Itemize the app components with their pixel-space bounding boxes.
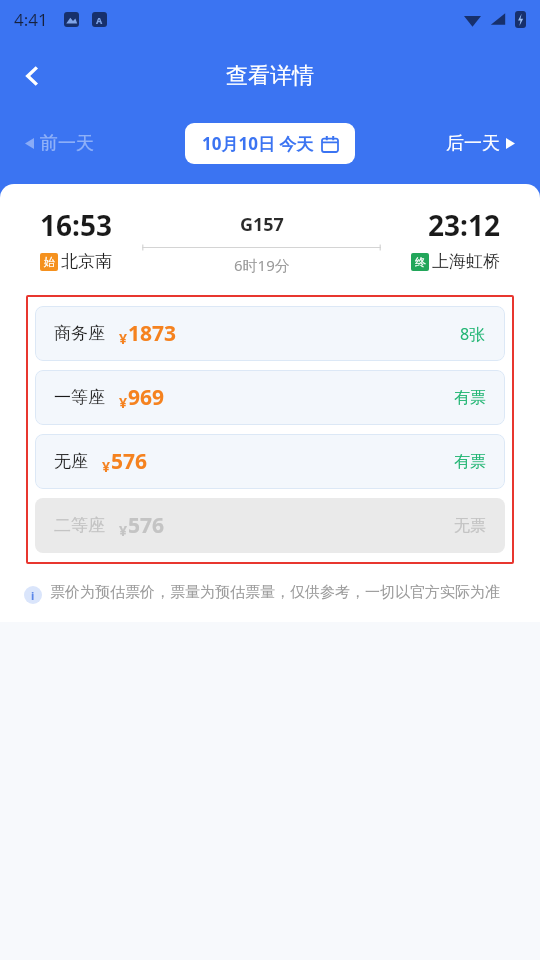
staticText: 969 xyxy=(128,383,165,412)
staticText: 576 xyxy=(128,511,165,540)
staticText: 6时19分 xyxy=(234,255,290,275)
staticText: 16:53 xyxy=(40,206,112,244)
button[interactable]: 16:53 xyxy=(26,202,514,279)
staticText: 后一天 xyxy=(446,132,500,155)
staticText: 4:41 xyxy=(14,8,48,31)
button[interactable]: 前一天 xyxy=(20,127,99,160)
staticText: ¥ xyxy=(119,521,128,540)
button[interactable]: 商务座 xyxy=(35,306,505,361)
staticText: A xyxy=(96,14,103,26)
staticText: 无票 xyxy=(454,516,486,536)
button[interactable]: Back xyxy=(9,52,57,100)
button[interactable]: 无座 xyxy=(35,434,505,489)
staticText: 北京南 xyxy=(61,251,112,272)
staticText: G157 xyxy=(240,212,284,237)
button[interactable]: 一等座 xyxy=(35,370,505,425)
button[interactable]: 后一天 xyxy=(441,127,520,160)
staticText: 10月10日 今天 xyxy=(202,132,314,155)
staticText: 1873 xyxy=(128,319,177,348)
staticText: 二等座 xyxy=(54,515,105,536)
staticText: i xyxy=(31,588,35,603)
button[interactable]: 10月10日 今天 xyxy=(185,123,355,164)
staticText: 576 xyxy=(111,447,148,476)
staticText: 8张 xyxy=(460,323,486,345)
staticText: 前一天 xyxy=(40,132,94,155)
staticText: 有票 xyxy=(454,388,486,408)
staticText: 始 xyxy=(44,255,55,269)
staticText: 一等座 xyxy=(54,387,105,408)
staticText: 无座 xyxy=(54,451,88,472)
staticText: 查看详情 xyxy=(226,62,314,90)
staticText: 23:12 xyxy=(428,206,500,244)
button: 二等座 xyxy=(35,498,505,553)
staticText: ¥ xyxy=(119,393,128,412)
staticText: ¥ xyxy=(119,329,128,348)
staticText: 商务座 xyxy=(54,323,105,344)
staticText: 票价为预估票价，票量为预估票量，仅供参考，一切以官方实际为准 xyxy=(50,583,516,602)
staticText: 有票 xyxy=(454,452,486,472)
staticText: 上海虹桥 xyxy=(432,251,500,272)
staticText: 终 xyxy=(415,255,426,269)
staticText: ¥ xyxy=(102,457,111,476)
